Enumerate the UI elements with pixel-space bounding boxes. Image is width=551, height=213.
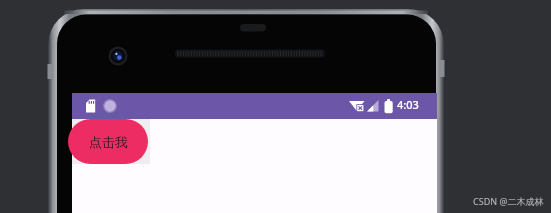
staticText: 4:03 [397,97,419,112]
staticText: 点击我 [89,134,128,150]
button[interactable]: 点击我 [68,119,148,164]
staticText: CSDN @二木成林 [473,195,544,207]
